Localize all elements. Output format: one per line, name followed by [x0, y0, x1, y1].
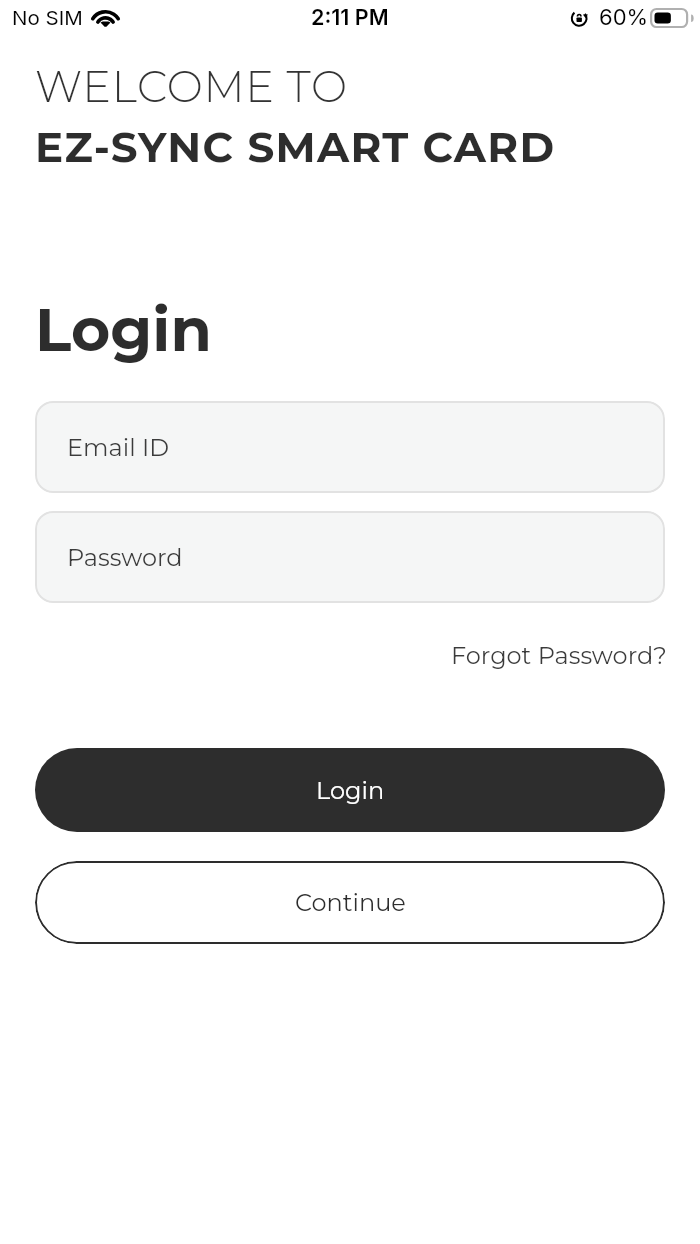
button[interactable]: Password: [35, 511, 665, 603]
staticText: Email ID: [67, 433, 169, 462]
staticText: 60%: [599, 4, 649, 31]
button[interactable]: Login: [35, 748, 665, 832]
staticText: Login: [316, 776, 385, 805]
button[interactable]: Forgot Password?: [451, 641, 667, 670]
staticText: Login: [35, 293, 212, 366]
staticText: Password: [67, 543, 183, 572]
staticText: WELCOME TO: [35, 60, 348, 112]
staticText: Continue: [295, 888, 406, 917]
staticText: EZ-SYNC SMART CARD: [35, 121, 556, 172]
staticText: No SIM: [12, 5, 83, 30]
other: Rotation lock: [571, 8, 592, 28]
staticText: 2:11 PM: [311, 4, 389, 30]
button[interactable]: Continue: [35, 861, 665, 944]
button[interactable]: Email ID: [35, 401, 665, 493]
